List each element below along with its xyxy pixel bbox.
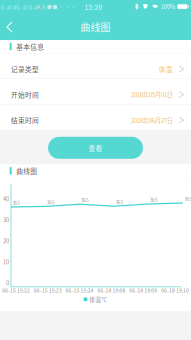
staticText: 2018年05月01日 xyxy=(131,90,173,99)
staticText: 曲线图 xyxy=(16,166,37,176)
staticText: 曲线图 xyxy=(80,20,110,34)
staticText: 100% xyxy=(161,2,175,11)
staticText: 06-15 15:24 xyxy=(66,286,94,294)
staticText: 06-15 15:23 xyxy=(34,286,62,294)
staticText: 0 xyxy=(6,279,9,287)
staticText: 36.5 xyxy=(47,199,54,205)
button[interactable]: 开始时间 xyxy=(0,79,191,104)
staticText: 06-18 19:09 xyxy=(129,286,157,294)
staticText: 20 xyxy=(3,237,9,245)
staticText: 30 xyxy=(3,216,9,224)
staticText: 06-18 19:10 xyxy=(161,286,189,294)
staticText: 36.5 xyxy=(150,197,157,203)
staticText: ··· xyxy=(58,3,76,11)
button[interactable]: 记录类型 xyxy=(0,53,191,79)
staticText: 基本信息 xyxy=(16,42,44,51)
staticText: 36.5 xyxy=(184,196,191,202)
staticText: 记录类型 xyxy=(11,64,39,74)
staticText: 结束时间 xyxy=(11,115,39,125)
staticText: 40 xyxy=(3,195,9,203)
staticText: 15:20 xyxy=(84,2,102,12)
staticText: 10 xyxy=(3,258,9,266)
staticText: 体温℃ xyxy=(89,295,107,303)
staticText: 06-18 19:08 xyxy=(97,286,125,294)
staticText: 36.5 xyxy=(81,197,88,203)
button[interactable]: 查看 xyxy=(48,137,143,159)
staticText: 06-15 15:22 xyxy=(2,286,30,294)
staticText: 0 .ıll 4G .ıll 0.4K/s xyxy=(1,3,46,11)
staticText: 体温 xyxy=(159,64,173,74)
button[interactable]: 结束时间 xyxy=(0,105,191,130)
staticText: 36.5 xyxy=(116,199,123,205)
button[interactable]: Back xyxy=(0,14,19,40)
staticText: 开始时间 xyxy=(11,90,39,99)
staticText: 查看 xyxy=(88,143,102,153)
staticText: 36.5 xyxy=(12,200,19,206)
staticText: 2018年06月27日 xyxy=(131,116,173,125)
